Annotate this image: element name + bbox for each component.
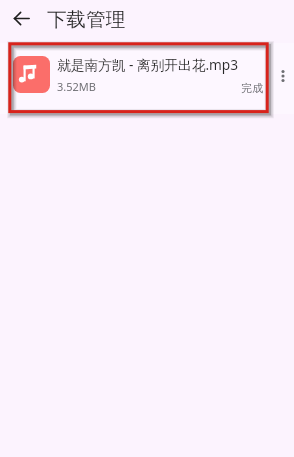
staticText: 3.52MB	[57, 79, 96, 94]
button[interactable]: Back	[0, 0, 41, 41]
staticText: 就是南方凯 - 离别开出花.mp3	[57, 55, 239, 74]
button[interactable]: More options	[266, 59, 294, 93]
staticText: 下载管理	[47, 7, 125, 32]
button[interactable]: 就是南方凯 - 离别开出花.mp3	[0, 43, 294, 114]
staticText: 完成	[241, 81, 263, 95]
